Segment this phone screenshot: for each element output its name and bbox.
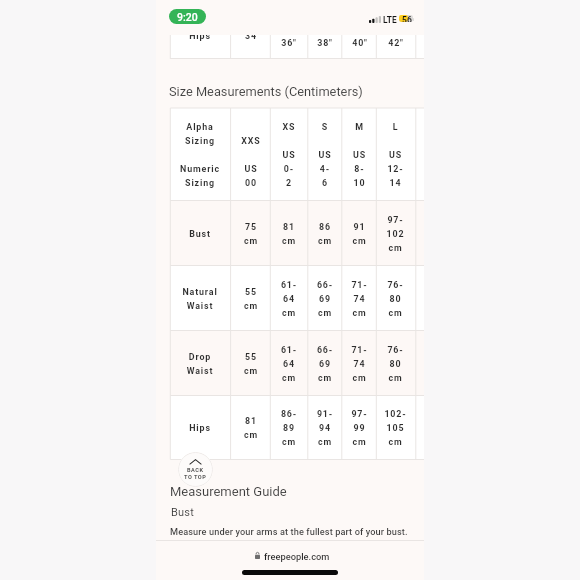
staticText: LTE [383, 15, 397, 25]
staticText: 40" [352, 38, 368, 48]
staticText: 71- 74 cm [342, 280, 377, 318]
staticText: 76- 80 cm [376, 345, 415, 383]
staticText: 86- 89 cm [270, 409, 308, 447]
staticText: 97- 99 cm [342, 409, 377, 447]
staticText: 71- 74 cm [342, 345, 377, 383]
staticText: 61- 64 cm [270, 280, 308, 318]
staticText: 56 [402, 15, 412, 22]
staticText: XXS US 00 [231, 122, 271, 188]
staticText: Bust [171, 506, 194, 519]
staticText: L US 12- 14 [376, 122, 415, 188]
staticText: 76- 80 cm [376, 280, 415, 318]
staticText: Measure under your arms at the fullest p… [170, 526, 408, 537]
staticText: 55 cm [231, 287, 271, 311]
staticText: 61- 64 cm [270, 345, 308, 383]
staticText: Natural Waist [170, 287, 230, 311]
staticText: XS US 0- 2 [270, 122, 308, 188]
staticText: 102- 105 cm [376, 409, 415, 447]
staticText: 91 cm [342, 222, 377, 246]
staticText: 91- 94 cm [308, 409, 342, 447]
staticText: Hips [189, 35, 211, 41]
staticText: freepeople.com [264, 551, 330, 562]
staticText: 42" [388, 38, 404, 48]
staticText: M US 8- 10 [342, 122, 377, 188]
staticText: Bust [170, 229, 230, 239]
staticText: Hips [170, 423, 230, 433]
staticText: BACK [187, 467, 204, 474]
staticText: 38" [317, 38, 333, 48]
staticText: TO TOP [184, 474, 207, 481]
staticText: 9:20 [177, 11, 198, 23]
button[interactable]: Back to top [178, 452, 213, 487]
staticText: 55 cm [231, 352, 271, 376]
staticText: 75 cm [231, 222, 271, 246]
staticText: S US 4- 6 [308, 122, 342, 188]
staticText: Measurement Guide [170, 484, 287, 499]
staticText: 34 [245, 35, 257, 41]
staticText: 66- 69 cm [308, 280, 342, 318]
staticText: 66- 69 cm [308, 345, 342, 383]
staticText: 81 cm [231, 416, 271, 440]
staticText: 36" [281, 38, 297, 48]
staticText: Drop Waist [170, 352, 230, 376]
staticText: Size Measurements (Centimeters) [169, 84, 363, 99]
staticText: 81 cm [270, 222, 308, 246]
button[interactable]: freepeople.com [248, 548, 336, 564]
staticText: 86 cm [308, 222, 342, 246]
staticText: Alpha Sizing Numeric Sizing [170, 122, 230, 188]
staticText: 97- 102 cm [376, 215, 415, 253]
